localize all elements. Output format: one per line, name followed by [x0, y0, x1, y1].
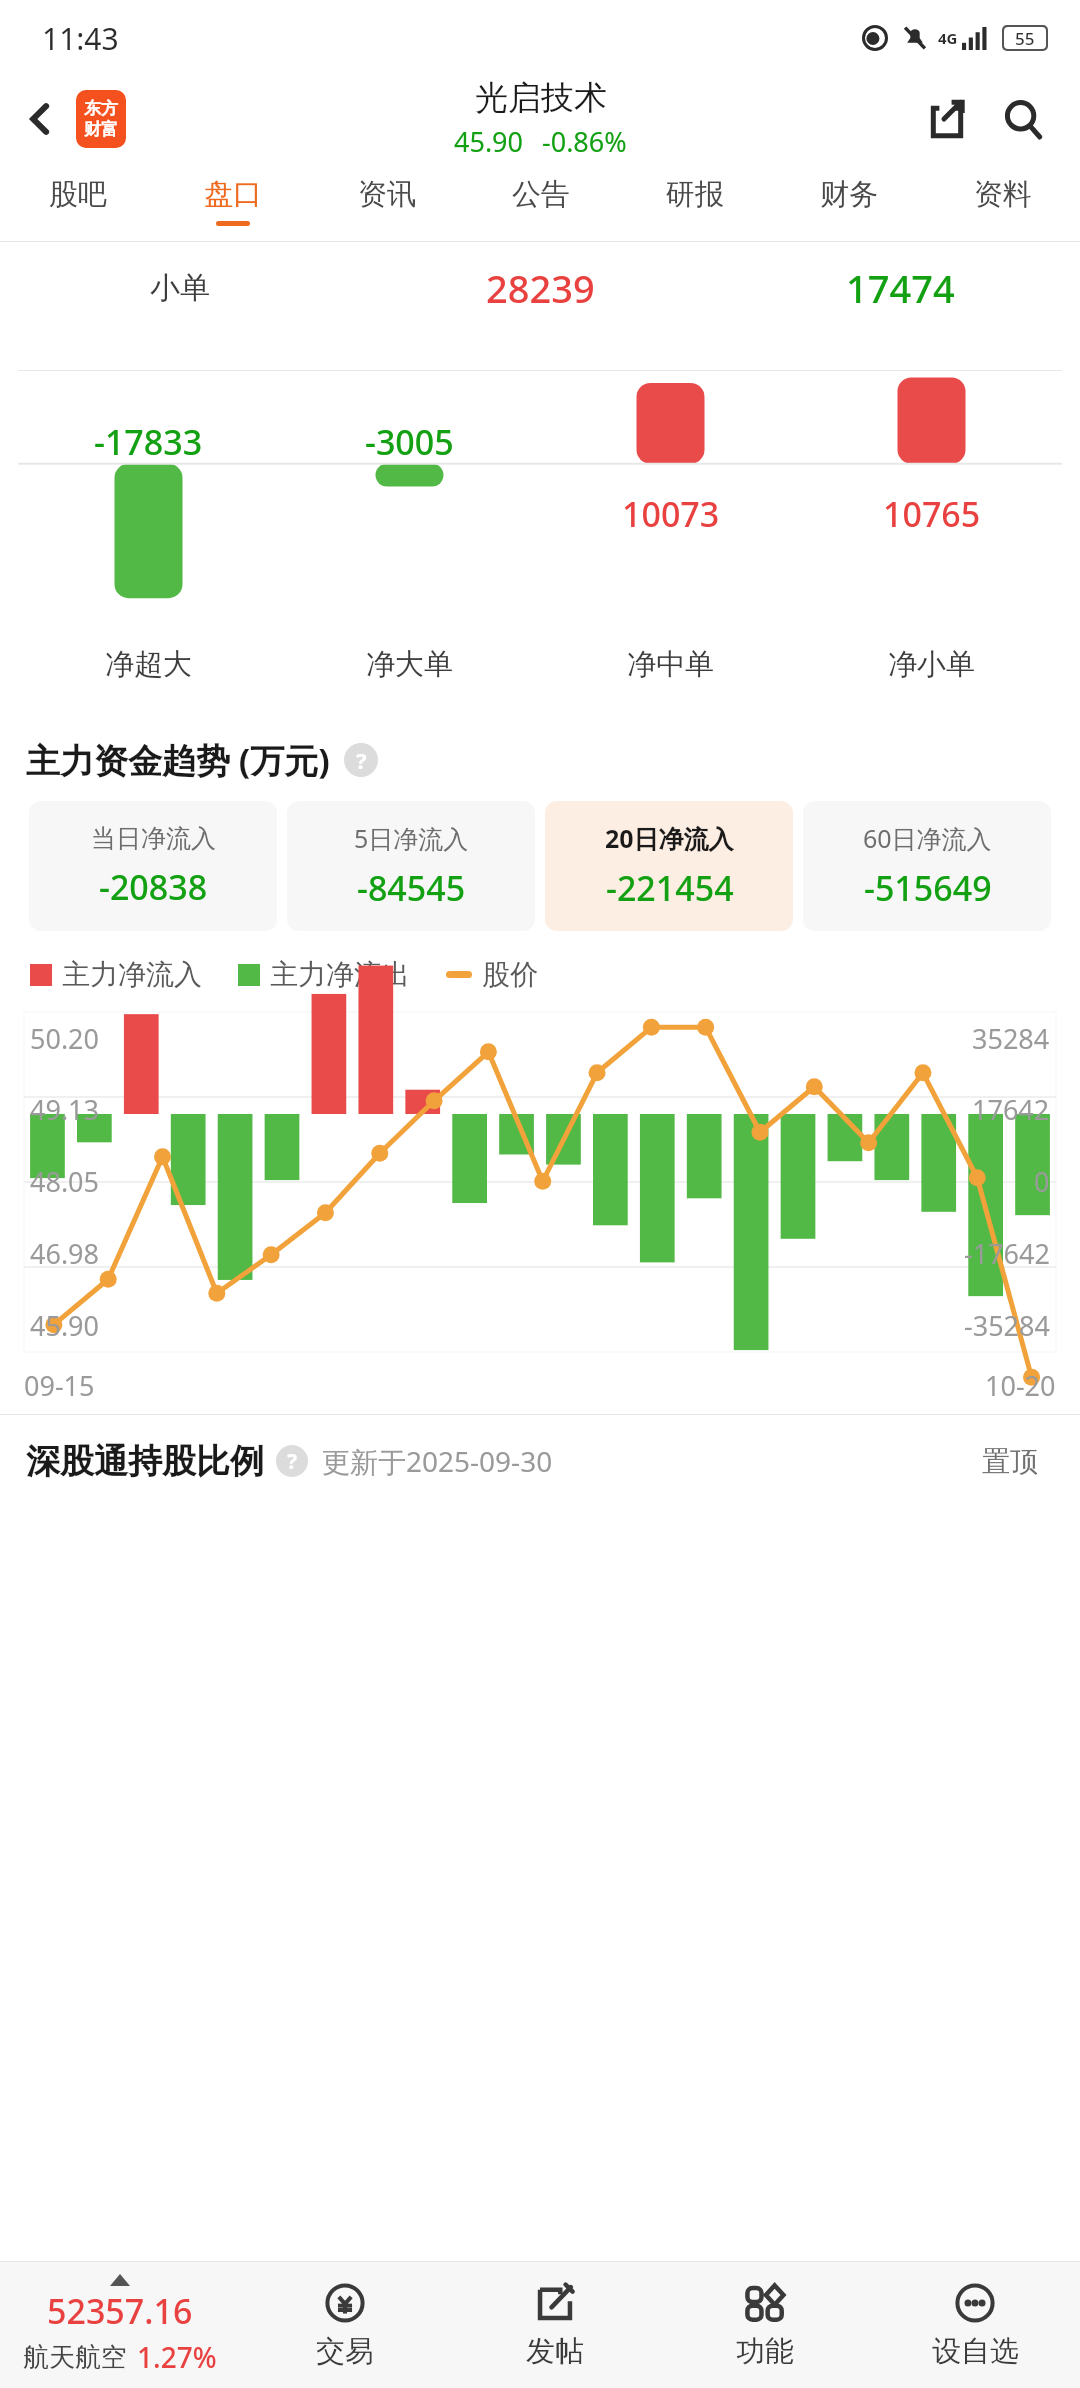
button[interactable]: Back — [10, 89, 70, 149]
button[interactable]: 功能 — [660, 2262, 870, 2388]
staticText: 46.98 — [30, 1235, 100, 1272]
staticText: 主力净流入 — [62, 957, 202, 992]
staticText: 主力净流出 — [270, 957, 410, 992]
staticText: 设自选 — [932, 2333, 1019, 2370]
button[interactable]: 52357.16 — [0, 2262, 240, 2388]
staticText: 50.20 — [30, 1020, 100, 1057]
staticText: 55 — [1015, 27, 1035, 49]
staticText: 交易 — [316, 2333, 374, 2370]
staticText: 45.90 — [454, 123, 524, 160]
staticText: 28239 — [486, 262, 595, 314]
button[interactable]: East Money — [76, 90, 126, 148]
staticText: 资料 — [974, 176, 1032, 213]
button[interactable]: Help — [276, 1445, 308, 1477]
staticText: 功能 — [736, 2333, 794, 2370]
staticText: 净中单 — [627, 646, 714, 683]
staticText: 置顶 — [982, 1444, 1038, 1479]
staticText: 净大单 — [366, 646, 453, 683]
staticText: 盘口 — [204, 176, 262, 213]
staticText: 17642 — [972, 1091, 1050, 1128]
button[interactable]: 20日净流入 — [545, 801, 793, 931]
staticText: 09-15 — [24, 1367, 95, 1404]
button[interactable]: 盘口 — [155, 161, 310, 241]
staticText: 17474 — [846, 262, 955, 314]
staticText: -35284 — [964, 1307, 1050, 1344]
staticText: 小单 — [150, 269, 210, 307]
staticText: -0.86% — [542, 123, 627, 160]
button[interactable]: 5日净流入 — [287, 801, 535, 931]
staticText: 35284 — [972, 1020, 1050, 1057]
staticText: ? — [287, 1447, 298, 1476]
button[interactable]: 研报 — [618, 161, 772, 241]
button[interactable]: 当日净流入 — [29, 801, 277, 931]
staticText: -20838 — [99, 864, 208, 910]
button[interactable]: 资料 — [926, 161, 1080, 241]
button[interactable]: Help — [344, 743, 378, 777]
button[interactable]: 交易 — [240, 2262, 450, 2388]
button[interactable]: 置顶 — [962, 1432, 1058, 1490]
staticText: 4G — [938, 28, 958, 48]
staticText: 股价 — [482, 957, 538, 992]
staticText: -221454 — [606, 865, 734, 911]
staticText: -3005 — [365, 419, 454, 465]
button[interactable]: 公告 — [464, 161, 618, 241]
staticText: 东方 — [84, 98, 118, 119]
staticText: 深股通持股比例 — [26, 1440, 264, 1483]
staticText: 10765 — [883, 491, 981, 537]
staticText: ? — [356, 745, 367, 775]
staticText: 更新于2025-09-30 — [322, 1442, 553, 1480]
staticText: -84545 — [357, 865, 466, 911]
staticText: 当日净流入 — [91, 823, 216, 854]
staticText: 净小单 — [888, 646, 975, 683]
button[interactable]: Share — [914, 86, 980, 152]
staticText: 股吧 — [49, 176, 107, 213]
staticText: 财富 — [84, 119, 118, 140]
staticText: 5日净流入 — [354, 821, 469, 855]
staticText: 1.27% — [137, 2338, 217, 2376]
staticText: 净超大 — [105, 646, 192, 683]
button[interactable]: 资讯 — [310, 161, 464, 241]
staticText: 财务 — [820, 176, 878, 213]
staticText: 20日净流入 — [605, 821, 734, 855]
staticText: 11:43 — [42, 18, 119, 59]
staticText: -17642 — [964, 1235, 1050, 1272]
button[interactable]: Search — [990, 86, 1056, 152]
button[interactable]: 发帖 — [450, 2262, 660, 2388]
staticText: 航天航空 — [23, 2341, 127, 2374]
button[interactable]: 股吧 — [0, 161, 155, 241]
staticText: 48.05 — [30, 1163, 100, 1200]
staticText: 0 — [1034, 1163, 1050, 1200]
staticText: 主力资金趋势 (万元) — [26, 737, 330, 783]
staticText: 发帖 — [526, 2333, 584, 2370]
button[interactable]: 60日净流入 — [803, 801, 1051, 931]
staticText: 60日净流入 — [863, 821, 992, 855]
staticText: 研报 — [666, 176, 724, 213]
button[interactable]: 财务 — [772, 161, 926, 241]
staticText: -515649 — [864, 865, 992, 911]
button[interactable]: 设自选 — [870, 2262, 1080, 2388]
staticText: 52357.16 — [47, 2288, 193, 2334]
staticText: 公告 — [512, 176, 570, 213]
staticText: 49.13 — [30, 1091, 100, 1128]
staticText: 10073 — [622, 491, 720, 537]
staticText: 45.90 — [30, 1307, 100, 1344]
staticText: 资讯 — [358, 176, 416, 213]
staticText: -17833 — [94, 419, 203, 465]
staticText: 10-20 — [985, 1367, 1056, 1404]
staticText: 光启技术 — [475, 77, 607, 119]
